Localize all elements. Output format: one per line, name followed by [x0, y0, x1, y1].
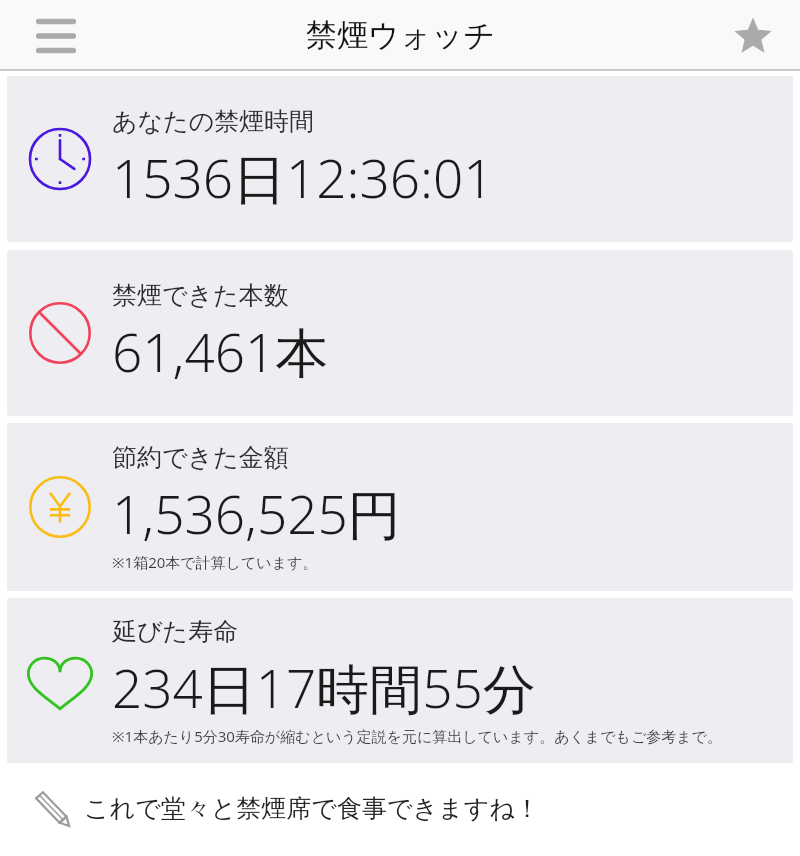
button[interactable]: Menu: [20, 6, 92, 66]
staticText: あなたの禁煙時間: [112, 106, 315, 137]
staticText: 1536日12:36:01: [112, 141, 494, 213]
button[interactable]: 禁煙できた本数: [7, 250, 793, 416]
staticText: これで堂々と禁煙席で食事できますね！: [84, 793, 540, 824]
staticText: 延びた寿命: [112, 616, 239, 647]
staticText: 節約できた金額: [112, 442, 289, 473]
button[interactable]: これで堂々と禁煙席で食事できますね！: [0, 763, 800, 854]
staticText: 1,536,525円: [112, 477, 401, 549]
button[interactable]: 延びた寿命: [7, 598, 793, 763]
staticText: 61,461本: [112, 315, 329, 387]
staticText: 禁煙ウォッチ: [306, 16, 495, 55]
button[interactable]: あなたの禁煙時間: [7, 76, 793, 242]
staticText: 234日17時間55分: [112, 651, 536, 723]
button[interactable]: 節約できた金額: [7, 423, 793, 591]
staticText: ※1箱20本で計算しています。: [112, 552, 318, 572]
button[interactable]: Favorite: [720, 6, 786, 66]
staticText: 禁煙できた本数: [112, 280, 289, 311]
staticText: ※1本あたり5分30寿命が縮むという定説を元に算出しています。あくまでもご参考ま…: [112, 726, 722, 746]
